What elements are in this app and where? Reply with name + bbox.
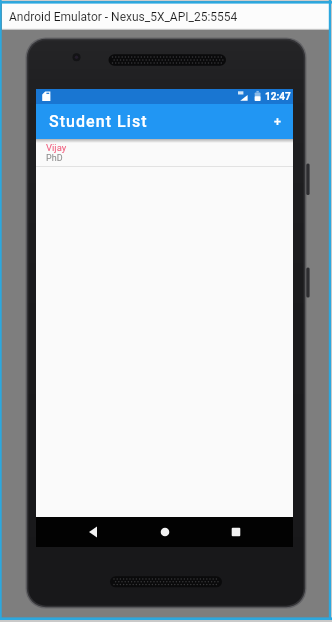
button[interactable] (81, 517, 105, 547)
staticText: Student List (49, 112, 148, 131)
button[interactable]: + (262, 104, 293, 139)
staticText: + (274, 114, 281, 129)
staticText: Vijay (46, 142, 67, 153)
button[interactable]: Vijay (36, 139, 293, 166)
button[interactable] (153, 517, 177, 547)
staticText: Android Emulator - Nexus_5X_API_25:5554 (9, 10, 238, 24)
staticText: PhD (46, 153, 63, 164)
staticText: 12:47 (265, 91, 291, 103)
button[interactable] (224, 517, 248, 547)
